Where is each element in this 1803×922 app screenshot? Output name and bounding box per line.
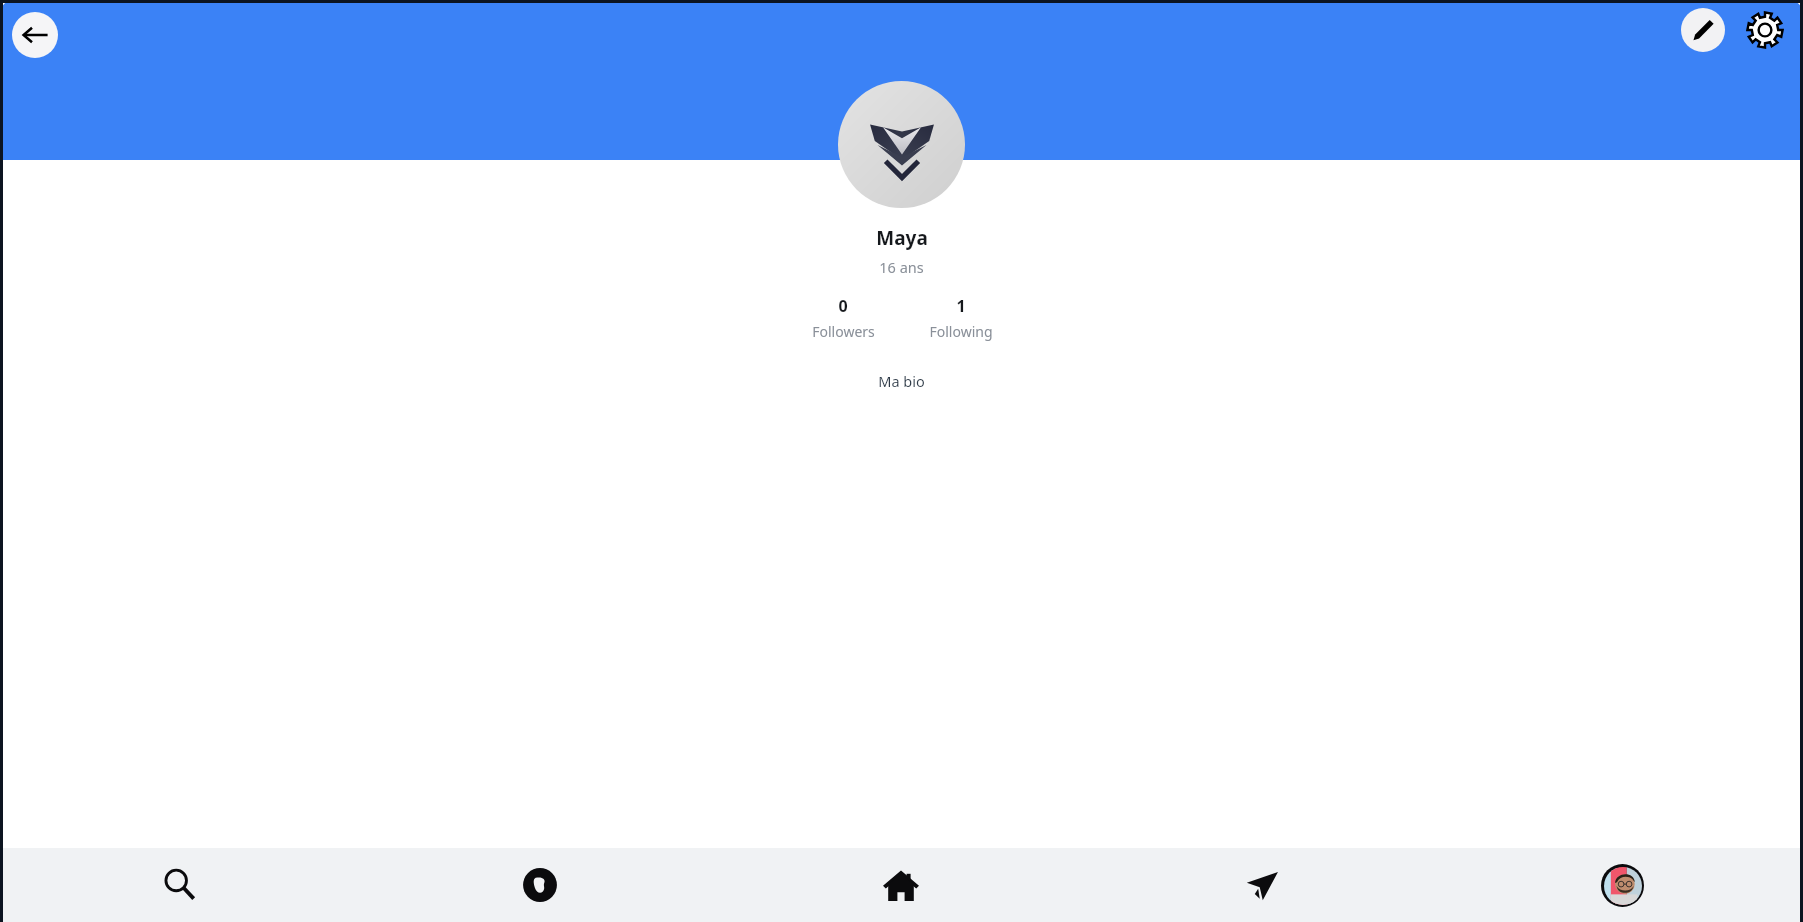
button[interactable]: Settings xyxy=(1741,6,1789,54)
button[interactable]: Profile xyxy=(1442,848,1803,922)
button[interactable]: Search xyxy=(0,848,360,922)
staticText: Following xyxy=(929,322,993,341)
button[interactable]: 0 xyxy=(795,295,891,341)
staticText: Maya xyxy=(876,225,928,251)
button[interactable]: Profile picture xyxy=(838,81,965,208)
staticText: 1 xyxy=(956,295,966,317)
button[interactable]: Messages xyxy=(1081,848,1442,922)
staticText: Ma bio xyxy=(878,371,925,391)
staticText: 16 ans xyxy=(879,257,924,277)
staticText: Followers xyxy=(812,322,875,341)
button[interactable]: Edit profile xyxy=(1681,8,1725,52)
button[interactable]: Home xyxy=(720,848,1081,922)
button[interactable]: Discover xyxy=(360,848,720,922)
button[interactable]: 1 xyxy=(913,295,1009,341)
button[interactable]: Back xyxy=(12,12,58,58)
staticText: 0 xyxy=(838,295,848,317)
